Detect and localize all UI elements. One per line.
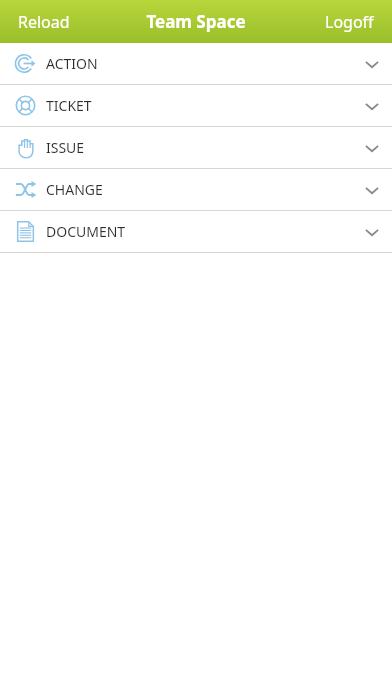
button[interactable]: Reload xyxy=(10,5,78,39)
other: Expand ACTION xyxy=(352,44,392,84)
button[interactable]: CHANGE xyxy=(0,169,392,210)
button[interactable]: Logoff xyxy=(317,5,382,39)
staticText: ISSUE xyxy=(46,138,85,157)
button[interactable]: ACTION xyxy=(0,43,392,84)
button[interactable]: DOCUMENT xyxy=(0,211,392,252)
staticText: CHANGE xyxy=(46,180,103,199)
other: Expand DOCUMENT xyxy=(352,212,392,252)
other: Expand ISSUE xyxy=(352,128,392,168)
other: Expand CHANGE xyxy=(352,170,392,210)
staticText: Logoff xyxy=(325,11,374,33)
staticText: ACTION xyxy=(46,54,98,73)
staticText: Reload xyxy=(18,11,70,33)
staticText: DOCUMENT xyxy=(46,222,126,241)
staticText: Team Space xyxy=(146,10,246,33)
button[interactable]: TICKET xyxy=(0,85,392,126)
staticText: TICKET xyxy=(46,96,92,115)
button[interactable]: ISSUE xyxy=(0,127,392,168)
other: Expand TICKET xyxy=(352,86,392,126)
